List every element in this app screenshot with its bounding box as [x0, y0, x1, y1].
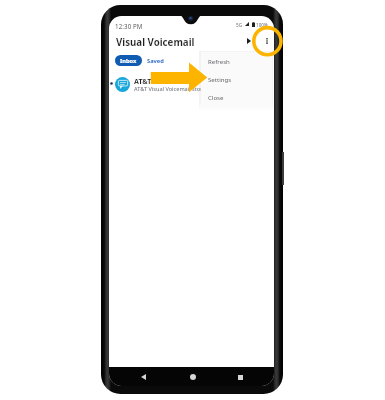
button[interactable]: Play all: [241, 33, 256, 48]
button[interactable]: Inbox: [115, 55, 142, 66]
button[interactable]: Home: [185, 369, 201, 385]
button[interactable]: Recent apps: [232, 369, 248, 385]
staticText: Close: [208, 93, 224, 101]
staticText: Refresh: [208, 57, 230, 65]
staticText: 100%: [256, 22, 268, 28]
staticText: 5G: [236, 22, 242, 28]
staticText: AT&T: [134, 76, 152, 86]
button[interactable]: Back: [135, 369, 151, 385]
button[interactable]: Close: [201, 88, 272, 106]
staticText: 12:30 PM: [115, 22, 143, 30]
button[interactable]: Refresh: [201, 52, 272, 70]
button[interactable]: AT&T: [109, 74, 274, 97]
staticText: Settings: [208, 75, 232, 83]
button[interactable]: Saved: [144, 55, 166, 66]
staticText: Saved: [147, 57, 164, 65]
staticText: Visual Voicemail: [116, 36, 195, 49]
staticText: Inbox: [120, 57, 137, 65]
button[interactable]: More options: [259, 33, 274, 48]
staticText: AT&T Visual Voicemail stor: [134, 85, 254, 93]
button[interactable]: Settings: [201, 70, 272, 88]
